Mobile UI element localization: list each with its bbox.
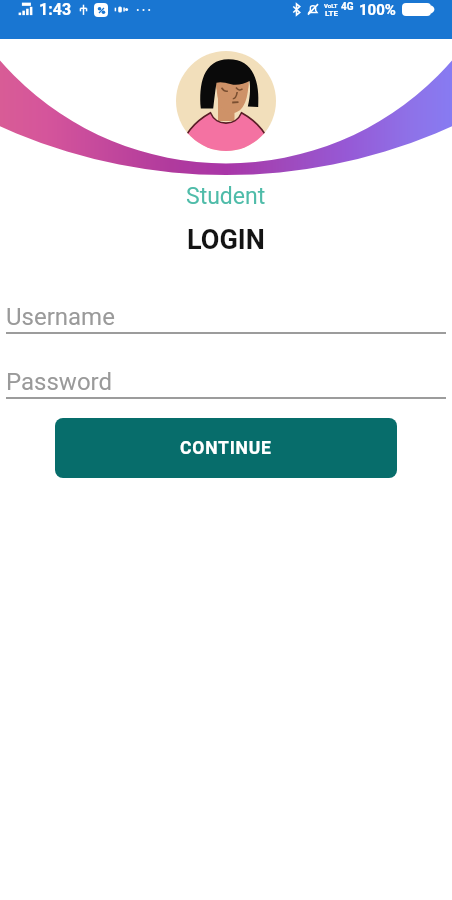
staticText: Username — [6, 303, 115, 331]
staticText: VoLT — [324, 2, 338, 9]
staticText: 4G — [341, 1, 354, 13]
staticText: LTE — [325, 9, 338, 18]
staticText: 100% — [359, 1, 396, 19]
button[interactable]: CONTINUE — [55, 418, 397, 478]
staticText: LOGIN — [187, 224, 265, 256]
button[interactable]: Username — [0, 303, 452, 335]
staticText: Password — [6, 368, 113, 396]
staticText: CONTINUE — [180, 438, 272, 459]
staticText: 1:43 — [39, 0, 72, 19]
other: Profile picture — [176, 51, 276, 151]
button[interactable]: Password — [0, 368, 452, 400]
staticText: Student — [186, 183, 266, 210]
